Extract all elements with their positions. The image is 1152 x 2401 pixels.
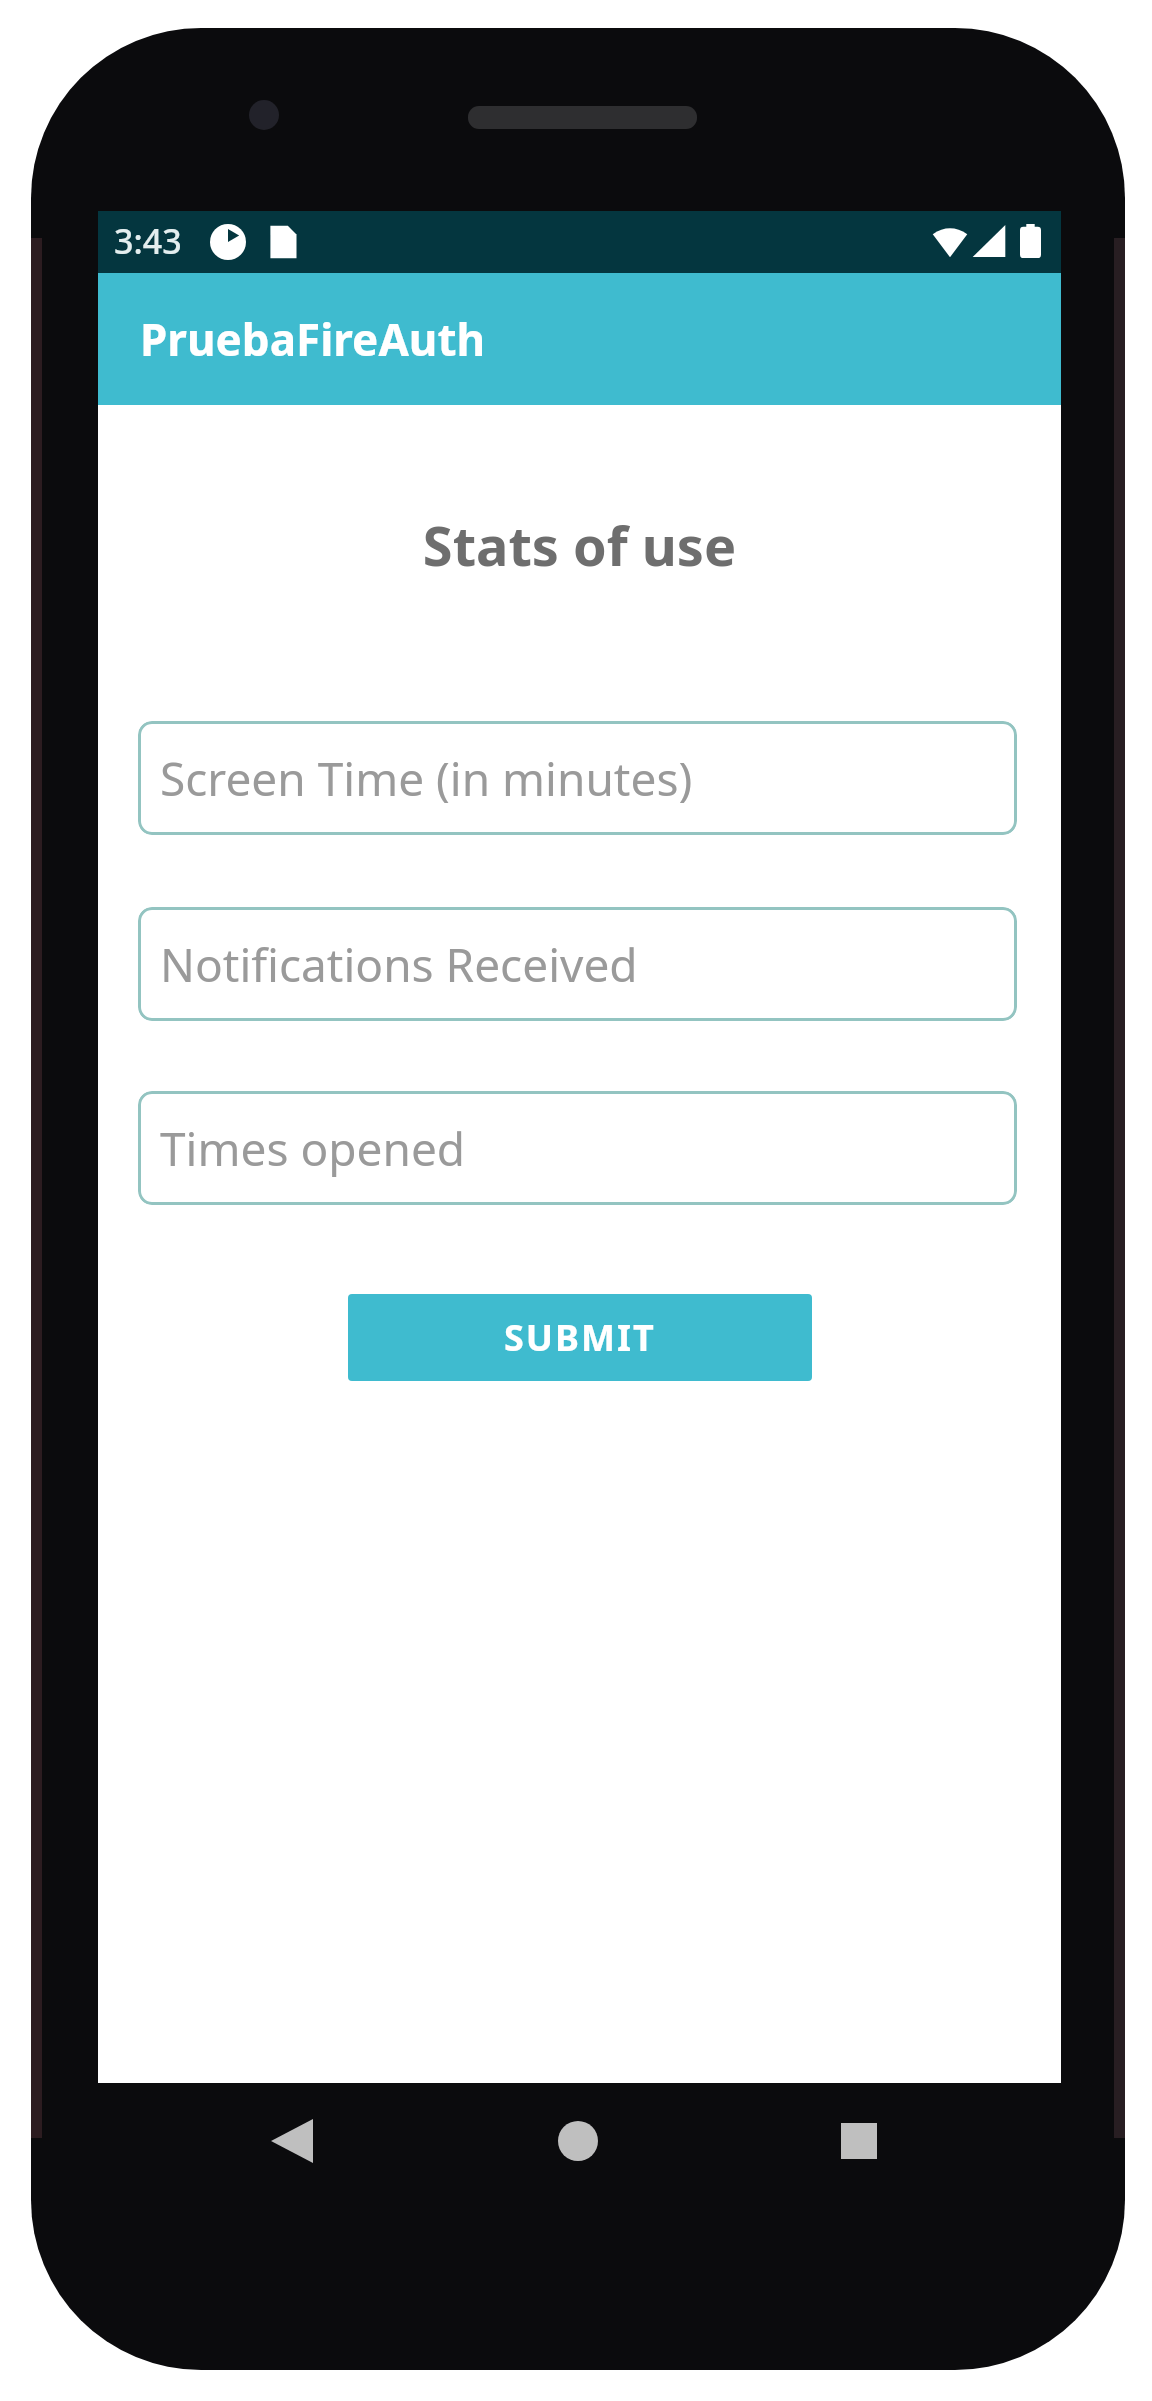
- staticText: Stats of use: [98, 508, 1061, 582]
- staticText: Notifications Received: [160, 933, 638, 996]
- button[interactable]: Screen Time (in minutes): [138, 721, 1017, 835]
- button[interactable]: Times opened: [138, 1091, 1017, 1205]
- staticText: Screen Time (in minutes): [160, 747, 693, 810]
- button[interactable]: Back: [244, 2093, 340, 2189]
- staticText: Times opened: [160, 1117, 466, 1180]
- button[interactable]: Recents: [811, 2093, 907, 2189]
- staticText: PruebaFireAuth: [140, 309, 486, 369]
- staticText: SUBMIT: [504, 1313, 656, 1362]
- button[interactable]: Home: [530, 2093, 626, 2189]
- button[interactable]: Notifications Received: [138, 907, 1017, 1021]
- staticText: 3:43: [114, 218, 182, 264]
- button[interactable]: SUBMIT: [348, 1294, 812, 1381]
